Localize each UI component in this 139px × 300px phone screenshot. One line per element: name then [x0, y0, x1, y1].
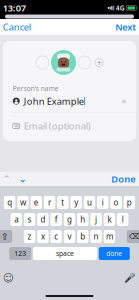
- button[interactable]: Add photo: [95, 56, 103, 69]
- button[interactable]: space: [33, 247, 97, 260]
- staticText: h: [80, 214, 85, 225]
- staticText: John Example: [24, 95, 84, 107]
- button[interactable]: Done: [106, 170, 139, 188]
- button[interactable]: Previous field: [0, 171, 15, 187]
- button[interactable]: John Example: [3, 95, 136, 112]
- button[interactable]: q: [4, 196, 15, 209]
- staticText: r: [48, 197, 51, 208]
- staticText: Done: [111, 173, 135, 185]
- button[interactable]: b: [77, 230, 89, 243]
- staticText: c: [54, 231, 58, 242]
- button[interactable]: d: [37, 213, 49, 226]
- staticText: j: [95, 214, 97, 225]
- staticText: m: [106, 231, 113, 242]
- button[interactable]: v: [64, 230, 75, 243]
- button[interactable]: ✉: [3, 113, 136, 141]
- staticText: ⇧: [1, 231, 9, 242]
- button[interactable]: i: [97, 196, 108, 209]
- button[interactable]: Next: [109, 17, 139, 37]
- button[interactable]: h: [77, 213, 88, 226]
- staticText: s: [28, 214, 32, 225]
- button[interactable]: g: [64, 213, 75, 226]
- staticText: l: [122, 214, 124, 225]
- staticText: ✉: [14, 123, 18, 129]
- staticText: ×: [121, 95, 126, 107]
- staticText: f: [55, 214, 58, 225]
- staticText: n: [94, 231, 99, 242]
- staticText: Next: [115, 21, 136, 33]
- staticText: a: [14, 214, 18, 225]
- staticText: ⌃: [3, 174, 11, 184]
- button[interactable]: Dictation: [120, 273, 139, 283]
- button[interactable]: n: [90, 230, 102, 243]
- staticText: done: [106, 249, 122, 258]
- button[interactable]: s: [24, 213, 35, 226]
- button[interactable]: c: [50, 230, 62, 243]
- button[interactable]: k: [104, 213, 115, 226]
- button[interactable]: Shift: [0, 230, 12, 243]
- button[interactable]: Change photo: [51, 50, 76, 75]
- staticText: 🎤: [124, 273, 136, 283]
- staticText: +: [96, 56, 101, 69]
- staticText: 123: [14, 249, 26, 258]
- staticText: 4G: [116, 4, 125, 12]
- staticText: u: [87, 197, 92, 208]
- staticText: v: [67, 231, 71, 242]
- button[interactable]: u: [84, 196, 95, 209]
- button[interactable]: x: [37, 230, 49, 243]
- button[interactable]: Cancel: [0, 17, 37, 37]
- button[interactable]: m: [104, 230, 115, 243]
- staticText: i: [102, 197, 104, 208]
- staticText: ⌫: [129, 232, 139, 241]
- button[interactable]: o: [110, 196, 122, 209]
- staticText: g: [67, 214, 72, 225]
- staticText: p: [127, 197, 132, 208]
- staticText: y: [74, 197, 78, 208]
- staticText: Cancel: [3, 21, 31, 33]
- staticText: 13:07: [3, 2, 26, 14]
- button[interactable]: r: [44, 196, 55, 209]
- staticText: space: [56, 249, 74, 258]
- button[interactable]: l: [117, 213, 128, 226]
- staticText: ⌄: [19, 174, 27, 184]
- staticText: z: [28, 231, 32, 242]
- button[interactable]: f: [50, 213, 62, 226]
- button[interactable]: t: [57, 196, 69, 209]
- staticText: Person's name: [13, 84, 59, 93]
- staticText: d: [40, 214, 45, 225]
- button[interactable]: p: [124, 196, 135, 209]
- button[interactable]: a: [10, 213, 22, 226]
- button[interactable]: w: [17, 196, 29, 209]
- button[interactable]: Delete: [127, 230, 139, 243]
- button[interactable]: 123: [9, 247, 31, 260]
- button[interactable]: done: [99, 247, 130, 260]
- staticText: t: [61, 197, 64, 208]
- button[interactable]: z: [24, 230, 35, 243]
- staticText: x: [41, 231, 45, 242]
- staticText: Email (optional): [24, 120, 91, 132]
- staticText: k: [107, 214, 111, 225]
- button[interactable]: Next field: [15, 171, 31, 187]
- staticText: q: [7, 197, 12, 208]
- staticText: b: [80, 231, 85, 242]
- staticText: w: [20, 197, 26, 208]
- button[interactable]: j: [90, 213, 102, 226]
- staticText: o: [113, 197, 118, 208]
- staticText: ☺: [3, 272, 14, 284]
- staticText: e: [34, 197, 39, 208]
- button[interactable]: e: [30, 196, 42, 209]
- button[interactable]: Emoji keyboard: [0, 272, 18, 284]
- button[interactable]: y: [70, 196, 82, 209]
